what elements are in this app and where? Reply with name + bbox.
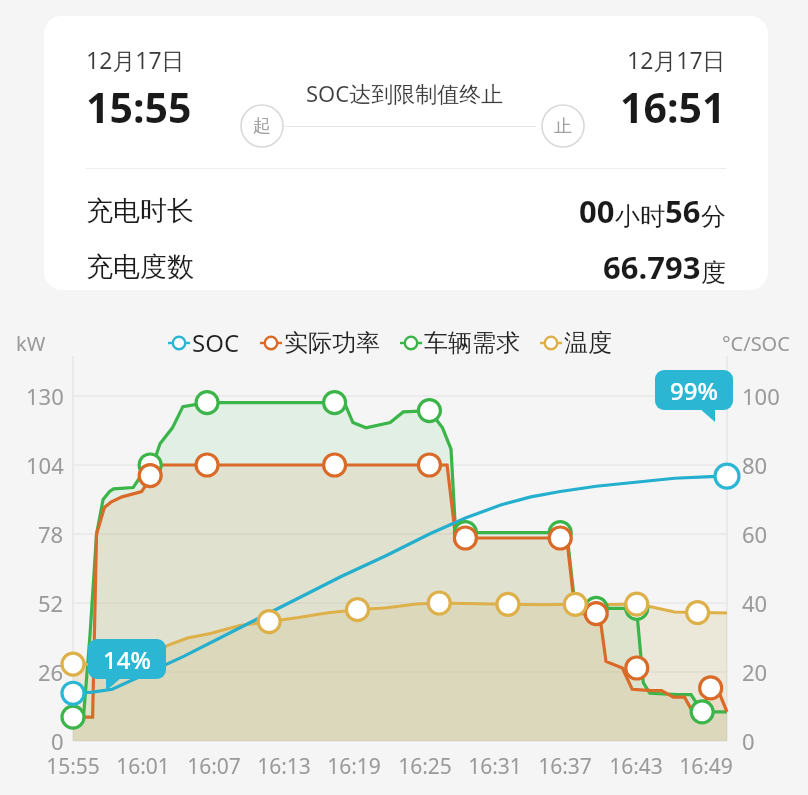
- staticText: 100: [742, 381, 780, 411]
- staticText: 52: [38, 588, 64, 618]
- staticText: 起: [253, 115, 271, 138]
- staticText: 130: [26, 381, 64, 411]
- staticText: 车辆需求: [424, 328, 520, 358]
- button[interactable]: 车辆需求: [400, 328, 520, 358]
- staticText: 分: [701, 201, 726, 232]
- button[interactable]: 充电时长: [44, 188, 768, 234]
- staticText: 12月17日: [86, 44, 185, 75]
- staticText: 00: [579, 190, 615, 232]
- staticText: 26: [38, 657, 64, 687]
- staticText: 温度: [564, 328, 612, 358]
- staticText: 度: [701, 257, 726, 288]
- staticText: 16:51: [620, 79, 726, 135]
- staticText: 16:13: [257, 752, 311, 781]
- staticText: 16:07: [187, 752, 241, 781]
- staticText: 16:01: [116, 752, 170, 781]
- staticText: 20: [742, 657, 768, 687]
- button[interactable]: 充电度数: [44, 244, 768, 290]
- staticText: 80: [742, 450, 768, 480]
- staticText: 15:55: [46, 752, 100, 781]
- button[interactable]: 12月17日: [44, 16, 768, 290]
- staticText: 0: [742, 726, 755, 756]
- button[interactable]: 温度: [540, 328, 612, 358]
- staticText: 16:31: [468, 752, 522, 781]
- staticText: 16:49: [679, 752, 733, 781]
- staticText: 99%: [670, 374, 718, 407]
- staticText: 60: [742, 519, 768, 549]
- staticText: 充电时长: [86, 194, 194, 228]
- staticText: 充电度数: [86, 250, 194, 284]
- staticText: 56: [665, 190, 701, 232]
- staticText: 78: [38, 519, 64, 549]
- staticText: 实际功率: [284, 328, 380, 358]
- button[interactable]: SOC: [168, 326, 240, 359]
- staticText: 小时: [615, 201, 665, 232]
- button[interactable]: 起: [240, 104, 284, 148]
- staticText: 15:55: [86, 79, 192, 135]
- staticText: 16:43: [609, 752, 663, 781]
- button[interactable]: 止: [541, 104, 585, 148]
- staticText: 16:19: [327, 752, 381, 781]
- button[interactable]: 实际功率: [260, 328, 380, 358]
- staticText: 66.793: [603, 246, 701, 288]
- staticText: 40: [742, 588, 768, 618]
- staticText: 0: [51, 726, 64, 756]
- staticText: 16:25: [398, 752, 452, 781]
- staticText: 止: [554, 115, 572, 138]
- staticText: 104: [26, 450, 64, 480]
- staticText: SOC达到限制值终止: [306, 78, 504, 108]
- staticText: °C/SOC: [722, 330, 790, 357]
- staticText: SOC: [192, 326, 240, 359]
- staticText: kW: [16, 330, 46, 357]
- staticText: 12月17日: [627, 44, 726, 75]
- staticText: 16:37: [538, 752, 592, 781]
- staticText: 14%: [103, 643, 151, 676]
